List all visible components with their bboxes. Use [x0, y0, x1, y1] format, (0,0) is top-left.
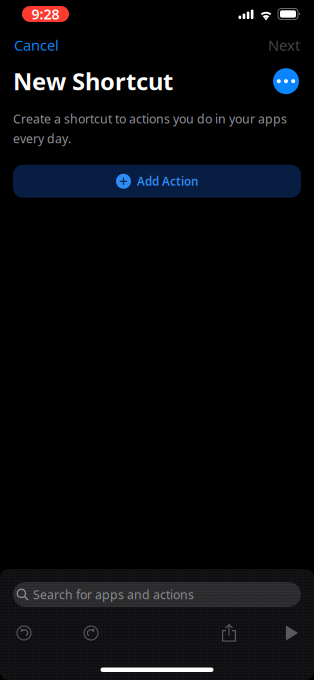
button[interactable]: Undo [0, 616, 48, 650]
staticText: Cancel [14, 35, 59, 55]
staticText: 9:28 [31, 4, 59, 24]
button[interactable]: Add Action [13, 165, 301, 198]
button[interactable]: More options [271, 66, 301, 96]
button[interactable]: Next [268, 35, 300, 55]
staticText: New Shortcut [13, 65, 173, 97]
button[interactable]: Search for apps and actions [13, 582, 301, 607]
button[interactable]: Redo [67, 616, 115, 650]
staticText: Add Action [137, 173, 198, 189]
button[interactable]: Cancel [14, 35, 59, 55]
button[interactable]: Share [205, 616, 253, 650]
staticText: Next [268, 35, 300, 55]
staticText: Create a shortcut to actions you do in y… [13, 110, 287, 127]
staticText: Search for apps and actions [33, 586, 194, 603]
button[interactable]: Run [270, 616, 314, 650]
staticText: every day. [13, 130, 71, 147]
